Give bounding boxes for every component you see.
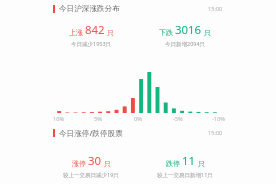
- staticText: 只: [204, 28, 211, 37]
- staticText: 今日涨停/跌停股票: [59, 128, 123, 138]
- staticText: 今日减少1953只: [71, 40, 112, 48]
- staticText: 较上一交易日减少19只: [63, 171, 119, 179]
- staticText: 30: [88, 153, 102, 169]
- staticText: 15:00: [208, 129, 223, 137]
- staticText: 跌停: [166, 159, 180, 168]
- staticText: 较上一交易日新增11只: [157, 171, 213, 179]
- staticText: 842: [85, 22, 105, 38]
- staticText: 11: [182, 153, 196, 169]
- button[interactable]: 下跌: [138, 22, 232, 48]
- staticText: 只: [107, 28, 114, 37]
- staticText: 10%: [53, 115, 65, 123]
- staticText: 涨停: [72, 159, 86, 168]
- staticText: 15:00: [208, 5, 223, 13]
- button[interactable]: 涨停: [44, 153, 138, 179]
- button[interactable]: 跌停: [138, 153, 232, 179]
- staticText: -5%: [173, 115, 183, 123]
- button[interactable]: 上涨: [44, 22, 138, 48]
- staticText: 0%: [134, 115, 142, 123]
- staticText: 5%: [94, 115, 102, 123]
- staticText: -10%: [212, 115, 225, 123]
- staticText: 下跌: [159, 28, 173, 37]
- staticText: 3016: [175, 22, 202, 38]
- staticText: 今日新增2094只: [165, 40, 206, 48]
- staticText: 只: [198, 159, 205, 168]
- staticText: 上涨: [69, 28, 83, 37]
- staticText: 只: [104, 159, 111, 168]
- staticText: 今日沪深涨跌分布: [59, 4, 120, 14]
